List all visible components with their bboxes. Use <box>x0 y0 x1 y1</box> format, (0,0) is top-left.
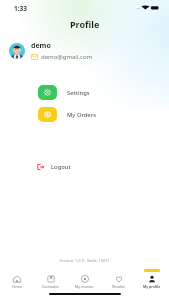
button[interactable]: Settings <box>34 82 94 103</box>
button[interactable]: Cocinados <box>33 269 67 300</box>
staticText: Settings <box>67 89 90 97</box>
button[interactable]: Home <box>0 269 33 300</box>
button[interactable]: My profile <box>135 269 169 300</box>
staticText: My counter <box>75 284 94 289</box>
staticText: demo@gmail.com <box>41 53 93 61</box>
staticText: Wishlist <box>112 284 125 289</box>
button[interactable]: Wishlist <box>101 269 135 300</box>
staticText: My Orders <box>67 111 96 119</box>
button[interactable]: demo <box>6 37 163 63</box>
staticText: 1:33 <box>14 4 27 13</box>
staticText: demo <box>31 41 51 51</box>
button[interactable]: My Orders <box>34 104 100 125</box>
staticText: Version: 1.0.0 - Build: 10071 <box>0 258 169 263</box>
staticText: Home <box>12 284 22 289</box>
staticText: Profile <box>70 18 100 30</box>
button[interactable]: Logout <box>33 160 75 174</box>
button[interactable]: My counter <box>67 269 101 300</box>
staticText: Logout <box>51 163 71 171</box>
staticText: My profile <box>143 284 161 289</box>
staticText: Cocinados <box>42 284 59 289</box>
